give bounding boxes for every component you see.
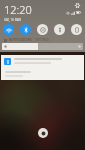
button[interactable]: Brightness (2, 43, 83, 50)
staticText: SAT, 16 MAR (4, 18, 22, 22)
staticText: 12:20 (4, 2, 32, 17)
button[interactable]: Wi-Fi (3, 24, 14, 35)
staticText: SETTINGS (35, 38, 49, 42)
button[interactable]: Bluetooth (20, 24, 31, 35)
button[interactable]: Clear all notifications (38, 128, 48, 138)
button[interactable]: Do not disturb (37, 24, 48, 35)
button[interactable] (1, 55, 84, 80)
button[interactable]: Flashlight (54, 24, 65, 35)
button[interactable]: Settings (74, 2, 81, 9)
staticText: NOTIFICATIONS (9, 38, 32, 42)
button[interactable]: Rotation (71, 24, 82, 35)
